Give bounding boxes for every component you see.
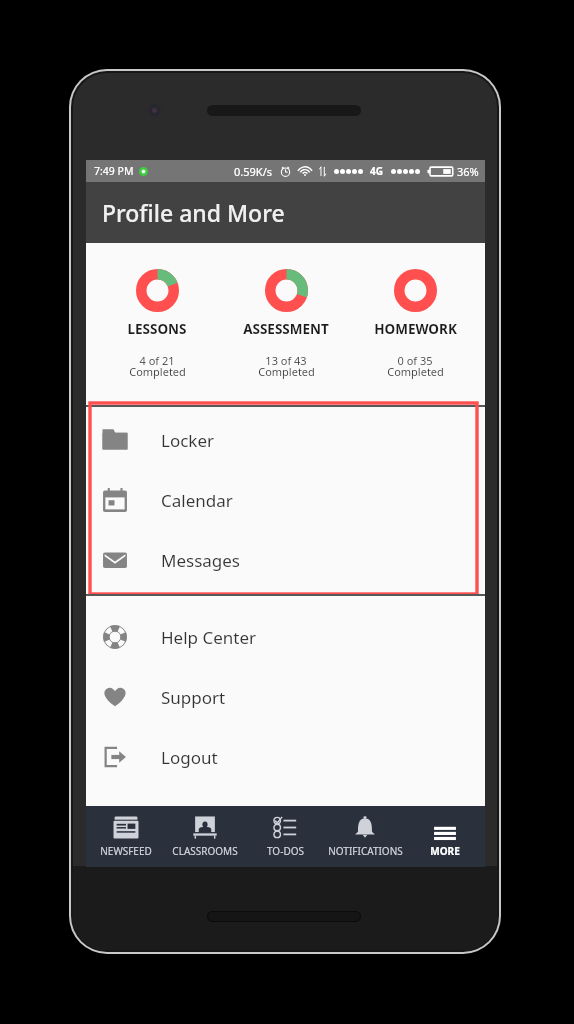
staticText: Help Center (161, 626, 257, 649)
staticText: 7:49 PM (94, 164, 134, 178)
staticText: CLASSROOMS (172, 844, 238, 858)
staticText: 4G (370, 164, 383, 178)
staticText: Completed (387, 364, 444, 379)
button[interactable]: Support (86, 667, 485, 727)
staticText: HOMEWORK (374, 320, 457, 338)
staticText: ASSESSMENT (243, 320, 329, 338)
staticText: Completed (129, 364, 186, 379)
staticText: Profile and More (102, 197, 285, 228)
staticText: 13 of 43 (265, 353, 307, 368)
staticText: 0 of 35 (397, 353, 433, 368)
button[interactable]: More (405, 806, 485, 867)
button[interactable]: Notifications (325, 806, 405, 867)
staticText: NOTIFICATIONS (328, 844, 403, 858)
staticText: TO-DOS (267, 844, 304, 858)
staticText: 36% (457, 164, 479, 179)
staticText: Support (161, 686, 226, 709)
staticText: Completed (258, 364, 315, 379)
button[interactable]: Locker (86, 410, 485, 470)
staticText: LESSONS (127, 320, 187, 338)
button[interactable]: Help Center (86, 607, 485, 667)
staticText: 0.59K/s (234, 164, 272, 179)
staticText: Messages (161, 549, 241, 572)
button[interactable]: Classrooms (165, 806, 245, 867)
staticText: Locker (161, 429, 215, 452)
button[interactable]: Newsfeed (86, 806, 165, 867)
button[interactable]: Calendar (86, 470, 485, 530)
staticText: MORE (430, 844, 460, 858)
button[interactable]: Messages (86, 530, 485, 590)
button[interactable]: Logout (86, 727, 485, 787)
staticText: Calendar (161, 489, 233, 512)
staticText: 4 of 21 (139, 353, 175, 368)
button[interactable]: To-dos (245, 806, 325, 867)
staticText: Logout (161, 746, 218, 769)
staticText: NEWSFEED (100, 844, 152, 858)
